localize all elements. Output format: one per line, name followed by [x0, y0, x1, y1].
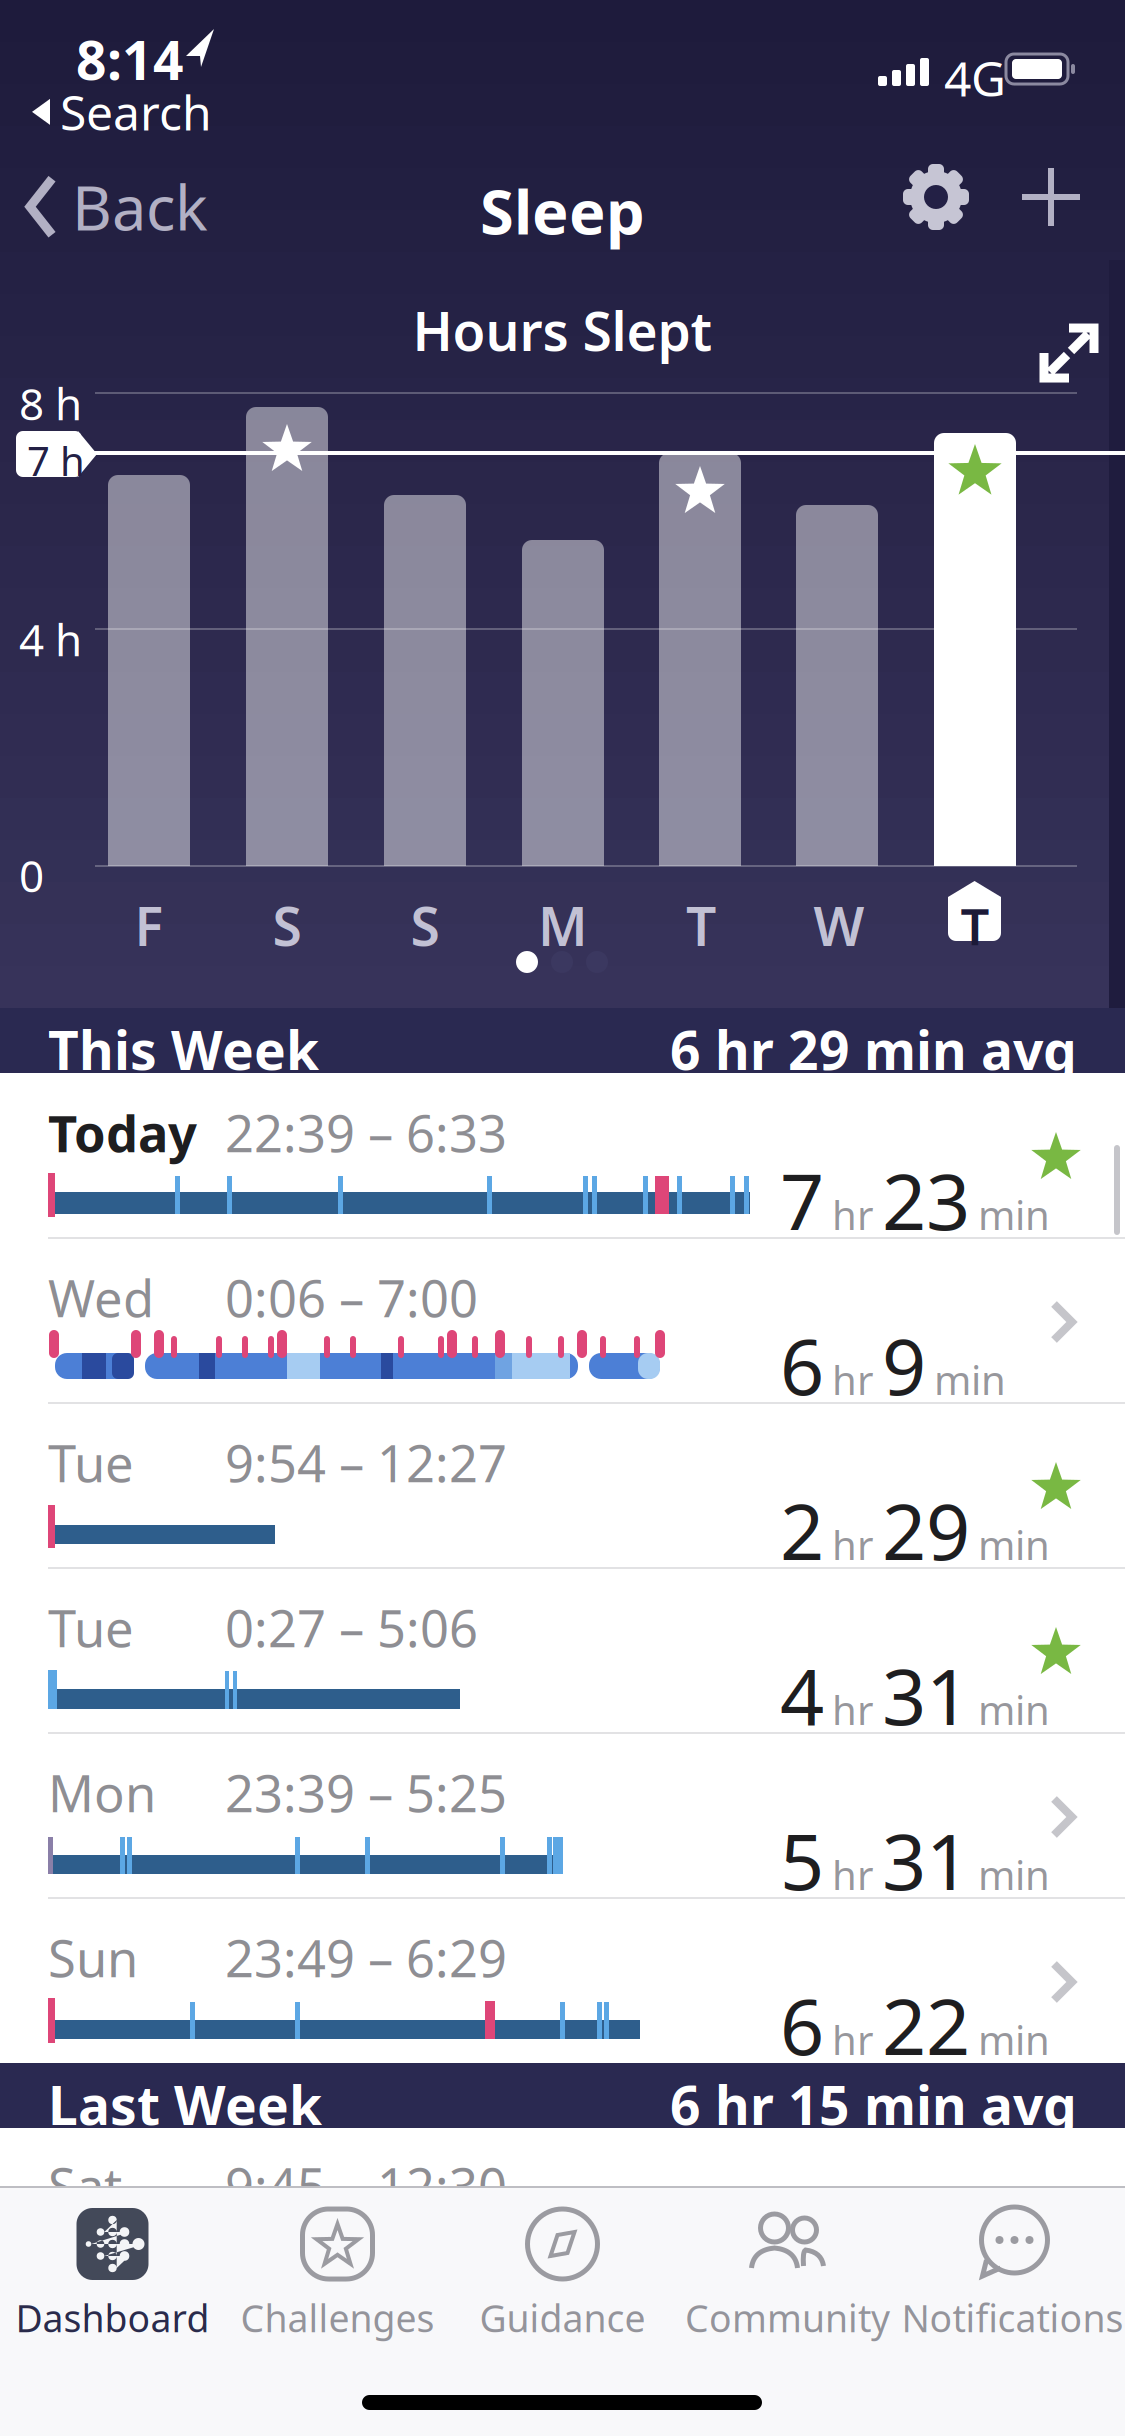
staticText: Tue: [48, 1429, 134, 1496]
staticText: min: [934, 1353, 1006, 1406]
staticText: Dashboard: [15, 2293, 209, 2343]
button[interactable]: [1022, 168, 1080, 226]
staticText: Sat: [48, 2152, 122, 2219]
staticText: 22: [882, 1974, 970, 2076]
button[interactable]: Mon: [0, 1733, 1125, 1898]
staticText: T: [686, 890, 716, 961]
staticText: 22:39 – 6:33: [225, 1099, 507, 1166]
staticText: Challenges: [240, 2293, 434, 2343]
staticText: 2: [780, 1479, 824, 1581]
staticText: 7: [780, 1149, 824, 1251]
staticText: Notifications: [901, 2293, 1123, 2343]
staticText: S: [272, 890, 301, 961]
staticText: 9:45 – 12:30: [225, 2152, 507, 2219]
staticText: 6: [780, 1314, 824, 1416]
staticText: W: [813, 890, 864, 961]
staticText: Search: [60, 80, 212, 144]
button[interactable]: Community: [675, 2186, 900, 2436]
button[interactable]: Search: [24, 80, 212, 144]
button[interactable]: Sun: [0, 1898, 1125, 2063]
button[interactable]: Dashboard: [0, 2186, 225, 2436]
button[interactable]: Challenges: [225, 2186, 450, 2436]
staticText: 4 h: [19, 610, 82, 668]
staticText: Tue: [48, 1594, 134, 1661]
button[interactable]: Today: [0, 1073, 1125, 1238]
staticText: min: [978, 2013, 1050, 2066]
button[interactable]: Tue: [0, 1403, 1125, 1568]
staticText: Guidance: [479, 2293, 645, 2343]
staticText: 7 h: [27, 434, 85, 487]
staticText: 4: [780, 1644, 824, 1746]
staticText: Mon: [48, 1759, 156, 1826]
staticText: 9: [882, 1314, 926, 1416]
staticText: 23: [882, 1149, 970, 1251]
staticText: 9:54 – 12:27: [225, 1429, 507, 1496]
button[interactable]: [901, 162, 971, 232]
staticText: min: [978, 1848, 1050, 1901]
staticText: 31: [882, 1809, 970, 1911]
staticText: 29: [882, 1479, 970, 1581]
button[interactable]: [1038, 322, 1100, 384]
staticText: 0:27 – 5:06: [225, 1594, 478, 1661]
staticText: 23:39 – 5:25: [225, 1759, 507, 1826]
button[interactable]: Notifications: [900, 2186, 1125, 2436]
staticText: hr: [832, 1353, 874, 1406]
button[interactable]: Wed: [0, 1238, 1125, 1403]
staticText: Wed: [48, 1264, 154, 1331]
button[interactable]: Guidance: [450, 2186, 675, 2436]
staticText: 23:49 – 6:29: [225, 1924, 507, 1991]
staticText: 6 hr 15 min avg: [670, 2069, 1077, 2140]
staticText: Last Week: [48, 2069, 322, 2140]
staticText: min: [978, 1518, 1050, 1571]
staticText: Community: [685, 2293, 890, 2343]
staticText: 8 h: [19, 374, 82, 432]
staticText: S: [410, 890, 439, 961]
staticText: hr: [832, 2013, 874, 2066]
staticText: Hours Slept: [412, 295, 712, 366]
staticText: This Week: [48, 1014, 319, 1085]
button[interactable]: Back: [24, 166, 208, 247]
staticText: 0:06 – 7:00: [225, 1264, 478, 1331]
staticText: 31: [882, 1644, 970, 1746]
staticText: 4G: [944, 46, 1006, 110]
staticText: hr: [832, 1683, 874, 1736]
staticText: 6 hr 29 min avg: [670, 1014, 1077, 1085]
staticText: min: [978, 1683, 1050, 1736]
staticText: hr: [832, 1848, 874, 1901]
staticText: hr: [832, 1518, 874, 1571]
staticText: F: [134, 890, 163, 961]
staticText: 5: [780, 1809, 824, 1911]
staticText: Today: [48, 1099, 197, 1166]
button[interactable]: Tue: [0, 1568, 1125, 1733]
staticText: Sun: [48, 1924, 138, 1991]
staticText: Sleep: [480, 170, 645, 251]
staticText: 0: [19, 846, 44, 904]
staticText: 6: [780, 1974, 824, 2076]
staticText: T: [960, 892, 989, 959]
staticText: 8:14: [76, 24, 184, 95]
staticText: M: [538, 890, 588, 961]
staticText: min: [978, 1188, 1050, 1241]
staticText: hr: [832, 1188, 874, 1241]
staticText: Back: [72, 166, 208, 247]
